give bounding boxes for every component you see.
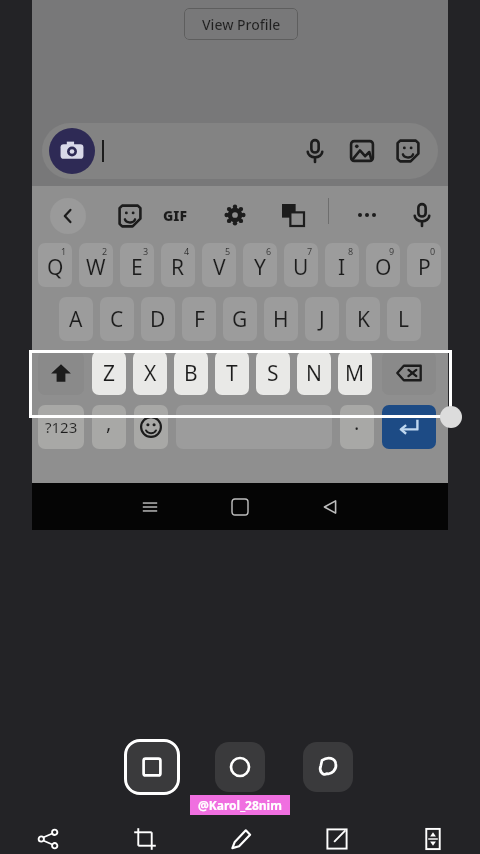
staticText: View Profile — [202, 15, 281, 34]
staticText: G — [232, 305, 248, 334]
button[interactable]: K — [346, 297, 380, 341]
button[interactable]: C — [100, 297, 134, 341]
button[interactable]: Period — [340, 405, 374, 449]
staticText: Z — [103, 359, 116, 388]
staticText: J — [319, 305, 325, 334]
staticText: I — [338, 253, 346, 282]
button[interactable]: 5 — [202, 243, 236, 287]
button[interactable]: Back — [319, 496, 341, 518]
staticText: R — [171, 253, 185, 282]
button[interactable]: Emoji — [134, 405, 168, 449]
button[interactable]: Translate — [278, 200, 308, 230]
staticText: M — [345, 359, 365, 388]
button[interactable]: M — [338, 351, 372, 395]
staticText: ?123 — [45, 417, 78, 437]
staticText: H — [273, 305, 289, 334]
staticText: F — [194, 305, 205, 334]
button[interactable]: L — [387, 297, 421, 341]
button[interactable]: Stickers — [393, 136, 423, 166]
button[interactable]: J — [305, 297, 339, 341]
button[interactable]: Backspace — [382, 351, 436, 395]
button[interactable]: Comma — [92, 405, 126, 449]
button[interactable]: G — [223, 297, 257, 341]
staticText: 0 — [430, 245, 436, 257]
button[interactable]: 2 — [79, 243, 113, 287]
staticText: 7 — [307, 245, 313, 257]
button[interactable]: X — [133, 351, 167, 395]
button[interactable]: ?123 — [38, 405, 84, 449]
staticText: E — [131, 253, 143, 282]
button[interactable]: Settings — [220, 200, 250, 230]
staticText: O — [375, 253, 392, 282]
staticText: W — [86, 253, 106, 282]
button[interactable]: Draw — [223, 821, 259, 854]
staticText: U — [293, 253, 309, 282]
button[interactable]: Rectangle shape — [127, 742, 177, 792]
staticText: GIF — [163, 206, 188, 225]
button[interactable]: Voice input — [407, 200, 437, 230]
staticText: 6 — [266, 245, 272, 257]
button[interactable]: Voice message — [300, 136, 330, 166]
staticText: N — [306, 359, 322, 388]
staticText: P — [418, 253, 431, 282]
staticText: S — [267, 359, 279, 388]
button[interactable]: B — [174, 351, 208, 395]
staticText: K — [357, 305, 370, 334]
button[interactable]: F — [182, 297, 216, 341]
button[interactable]: H — [264, 297, 298, 341]
button[interactable]: Selection region — [29, 350, 452, 418]
staticText: 5 — [225, 245, 231, 257]
staticText: 9 — [389, 245, 395, 257]
button[interactable]: Home — [229, 496, 251, 518]
button[interactable]: 4 — [161, 243, 195, 287]
button[interactable]: 6 — [243, 243, 277, 287]
button[interactable]: More options — [352, 200, 382, 230]
button[interactable]: 8 — [325, 243, 359, 287]
button[interactable]: N — [297, 351, 331, 395]
button[interactable]: Gallery — [347, 136, 377, 166]
button[interactable]: 9 — [366, 243, 400, 287]
button[interactable]: Share — [30, 821, 66, 854]
button[interactable]: Back — [50, 198, 86, 234]
staticText: 2 — [102, 245, 108, 257]
button[interactable]: Resize handle — [440, 406, 462, 428]
staticText: 1 — [61, 245, 67, 257]
button[interactable]: 0 — [407, 243, 441, 287]
button[interactable]: Space — [176, 405, 332, 449]
button[interactable]: 3 — [120, 243, 154, 287]
staticText: T — [226, 359, 238, 388]
staticText: A — [69, 305, 83, 334]
staticText: C — [110, 305, 124, 334]
button[interactable]: Camera — [49, 128, 95, 174]
button[interactable]: S — [256, 351, 290, 395]
staticText: . — [354, 409, 360, 436]
button[interactable]: D — [141, 297, 175, 341]
staticText: 8 — [348, 245, 354, 257]
staticText: X — [144, 359, 157, 388]
staticText: B — [184, 359, 198, 388]
button[interactable]: Recents — [139, 496, 161, 518]
button[interactable]: T — [215, 351, 249, 395]
staticText: V — [213, 253, 226, 282]
staticText: Q — [47, 253, 64, 282]
button[interactable]: Crop — [127, 821, 163, 854]
button[interactable]: 1 — [38, 243, 72, 287]
button[interactable]: 7 — [284, 243, 318, 287]
button[interactable]: Annotate — [319, 821, 355, 854]
staticText: D — [150, 305, 166, 334]
staticText: @Karol_28nim — [198, 797, 282, 813]
button[interactable]: Stickers — [115, 201, 145, 231]
staticText: 3 — [143, 245, 149, 257]
staticText: 4 — [184, 245, 190, 257]
staticText: , — [106, 409, 112, 436]
button[interactable]: View Profile — [184, 8, 298, 40]
button[interactable]: Enter — [382, 405, 436, 449]
button[interactable]: GIF — [157, 202, 193, 228]
staticText: L — [398, 305, 410, 334]
button[interactable]: Adjust — [415, 821, 451, 854]
button[interactable]: Z — [92, 351, 126, 395]
button[interactable]: Circle shape — [215, 742, 265, 792]
button[interactable]: Shift — [38, 351, 84, 395]
button[interactable]: A — [59, 297, 93, 341]
button[interactable]: Blob shape — [303, 742, 353, 792]
